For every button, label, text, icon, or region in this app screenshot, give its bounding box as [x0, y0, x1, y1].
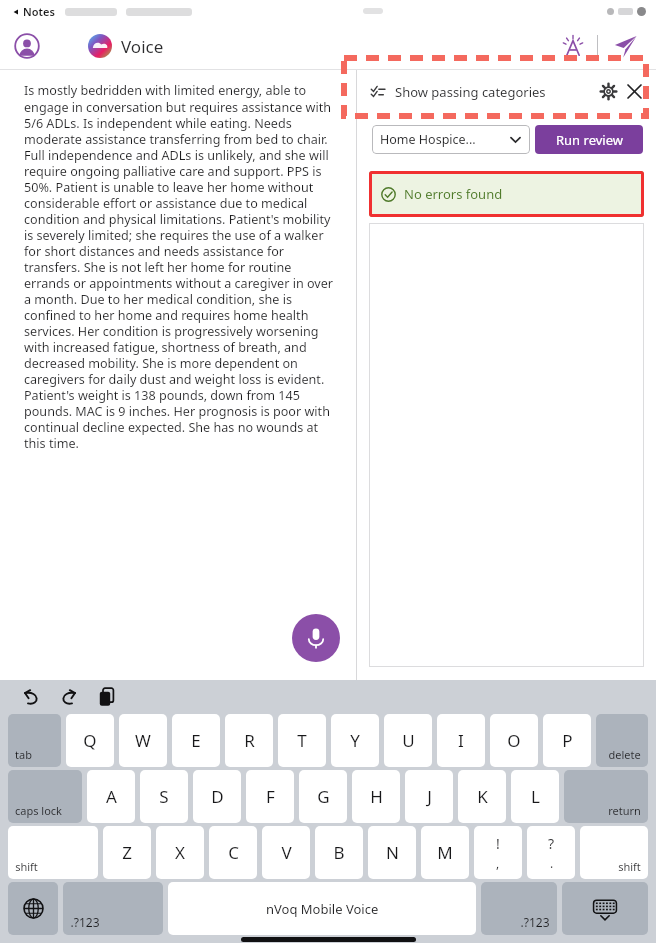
button[interactable]: C	[209, 826, 257, 879]
staticText: X	[175, 841, 185, 864]
staticText: !	[496, 834, 500, 853]
staticText: Run review	[556, 131, 623, 149]
staticText: B	[333, 841, 345, 864]
button[interactable]: Record voice	[292, 614, 340, 662]
button[interactable]: delete	[596, 714, 648, 767]
staticText: Is mostly bedridden with limited energy,…	[24, 82, 338, 451]
button[interactable]: D	[193, 770, 241, 823]
button[interactable]: Run review	[535, 125, 643, 154]
staticText: C	[228, 841, 239, 864]
button[interactable]: G	[299, 770, 347, 823]
staticText: Notes	[23, 4, 55, 19]
button[interactable]: H	[352, 770, 400, 823]
button[interactable]: A	[87, 770, 135, 823]
staticText: P	[562, 729, 573, 752]
staticText: Show passing categories	[395, 83, 546, 101]
button[interactable]: L	[511, 770, 559, 823]
button[interactable]: nVoq Mobile Voice	[168, 882, 476, 935]
button[interactable]: Is mostly bedridden with limited energy,…	[0, 70, 356, 680]
button[interactable]: Q	[66, 714, 114, 767]
button[interactable]: return	[564, 770, 648, 823]
button[interactable]: tab	[8, 714, 61, 767]
staticText: N	[386, 841, 399, 864]
button[interactable]: W	[119, 714, 167, 767]
staticText: O	[507, 729, 521, 752]
button[interactable]: N	[368, 826, 416, 879]
staticText: ,	[496, 855, 500, 871]
button[interactable]: T	[278, 714, 326, 767]
button[interactable]: Change language	[8, 882, 58, 935]
button[interactable]: P	[543, 714, 591, 767]
button[interactable]: B	[315, 826, 363, 879]
button[interactable]: .?123	[481, 882, 557, 935]
staticText: A	[106, 785, 117, 808]
button[interactable]: S	[140, 770, 188, 823]
staticText: nVoq Mobile Voice	[266, 900, 379, 918]
button[interactable]: K	[458, 770, 506, 823]
button[interactable]: J	[405, 770, 453, 823]
button[interactable]: Redo	[56, 684, 82, 710]
button[interactable]: I	[437, 714, 485, 767]
staticText: S	[159, 785, 169, 808]
staticText: .?123	[520, 914, 550, 930]
staticText: caps lock	[15, 803, 62, 818]
staticText: T	[297, 729, 307, 752]
button[interactable]: shift	[8, 826, 98, 879]
staticText: W	[135, 729, 151, 752]
button[interactable]: X	[156, 826, 204, 879]
button[interactable]: Account	[10, 29, 44, 63]
button[interactable]: No errors found	[369, 171, 644, 217]
button[interactable]: M	[421, 826, 469, 879]
staticText: Home Hospice...	[380, 131, 476, 148]
staticText: Z	[122, 841, 132, 864]
staticText: V	[281, 841, 292, 864]
button[interactable]: Voice	[88, 34, 164, 58]
button[interactable]: F	[246, 770, 294, 823]
staticText: Voice	[121, 35, 164, 58]
button[interactable]: Y	[331, 714, 379, 767]
staticText: Q	[83, 729, 97, 752]
button[interactable]: O	[490, 714, 538, 767]
staticText: K	[477, 785, 488, 808]
button[interactable]: V	[262, 826, 310, 879]
staticText: M	[437, 841, 453, 864]
staticText: H	[370, 785, 383, 808]
staticText: E	[191, 729, 201, 752]
staticText: Y	[350, 729, 360, 752]
button[interactable]: Settings	[595, 78, 621, 104]
button[interactable]: !	[474, 826, 522, 879]
button[interactable]: Home Hospice...	[372, 125, 530, 154]
button[interactable]: ?	[527, 826, 575, 879]
button[interactable]: AI assist	[556, 29, 590, 63]
staticText: shift	[618, 859, 641, 874]
button[interactable]: Z	[103, 826, 151, 879]
button[interactable]: caps lock	[8, 770, 82, 823]
staticText: I	[458, 729, 464, 752]
staticText: L	[531, 785, 540, 808]
staticText: F	[266, 785, 275, 808]
staticText: .	[550, 855, 554, 871]
button[interactable]: Hide keyboard	[562, 882, 648, 935]
button[interactable]: Undo	[18, 684, 44, 710]
button[interactable]: Copy	[94, 684, 120, 710]
staticText: delete	[608, 747, 641, 762]
staticText: D	[211, 785, 224, 808]
button[interactable]: R	[225, 714, 273, 767]
staticText: R	[244, 729, 255, 752]
staticText: return	[608, 803, 641, 818]
button[interactable]: .?123	[63, 882, 163, 935]
staticText: J	[427, 785, 432, 808]
staticText: tab	[15, 747, 32, 762]
staticText: U	[402, 729, 415, 752]
staticText: .?123	[70, 914, 100, 930]
button[interactable]: E	[172, 714, 220, 767]
button[interactable]: Close	[621, 78, 647, 104]
button[interactable]: Send	[608, 29, 642, 63]
staticText: ?	[548, 834, 555, 853]
staticText: G	[317, 785, 330, 808]
button[interactable]: U	[384, 714, 432, 767]
staticText: No errors found	[404, 185, 503, 203]
staticText: shift	[15, 859, 38, 874]
button[interactable]: Show passing categories	[358, 71, 594, 112]
button[interactable]: shift	[580, 826, 648, 879]
